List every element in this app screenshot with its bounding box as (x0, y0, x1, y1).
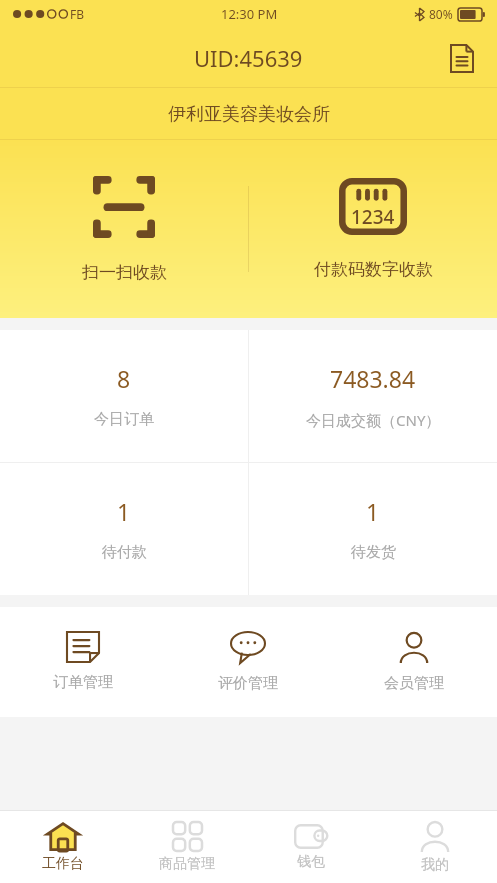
staticText: 工作台 (42, 855, 84, 873)
button[interactable]: Document (441, 37, 483, 79)
staticText: 伊利亚美容美妆会所 (168, 103, 330, 126)
button[interactable]: 我的 (373, 811, 497, 883)
button[interactable]: 1234 (249, 140, 497, 318)
staticText: FB (70, 6, 85, 22)
staticText: 今日订单 (94, 410, 154, 429)
staticText: 待付款 (102, 543, 147, 562)
staticText: 扫一扫收款 (82, 262, 167, 283)
button[interactable]: 1 (0, 463, 248, 595)
button[interactable]: 工作台 (0, 811, 125, 883)
staticText: 8 (117, 363, 131, 394)
staticText: 付款码数字收款 (314, 259, 433, 280)
button[interactable]: 1 (249, 463, 497, 595)
staticText: 评价管理 (218, 674, 278, 693)
staticText: UID:45639 (194, 43, 303, 73)
staticText: 我的 (421, 856, 449, 874)
staticText: 钱包 (297, 853, 325, 871)
button[interactable]: 扫一扫收款 (0, 140, 248, 318)
button[interactable]: 评价管理 (165, 607, 331, 717)
staticText: 7483.84 (330, 363, 416, 394)
staticText: 订单管理 (53, 673, 113, 692)
button[interactable]: 会员管理 (331, 607, 497, 717)
staticText: 1 (117, 496, 131, 527)
button[interactable]: 商品管理 (125, 811, 249, 883)
staticText: 今日成交额（CNY） (306, 410, 441, 430)
staticText: 12:30 PM (221, 5, 278, 23)
staticText: 会员管理 (384, 674, 444, 693)
staticText: 80% (429, 6, 453, 22)
button[interactable]: 订单管理 (0, 607, 165, 717)
button[interactable]: 7483.84 (249, 330, 497, 462)
button[interactable]: 8 (0, 330, 248, 462)
staticText: 1234 (351, 204, 395, 230)
staticText: 1 (366, 496, 380, 527)
staticText: 待发货 (351, 543, 396, 562)
staticText: 商品管理 (159, 855, 215, 873)
button[interactable]: 钱包 (249, 811, 373, 883)
